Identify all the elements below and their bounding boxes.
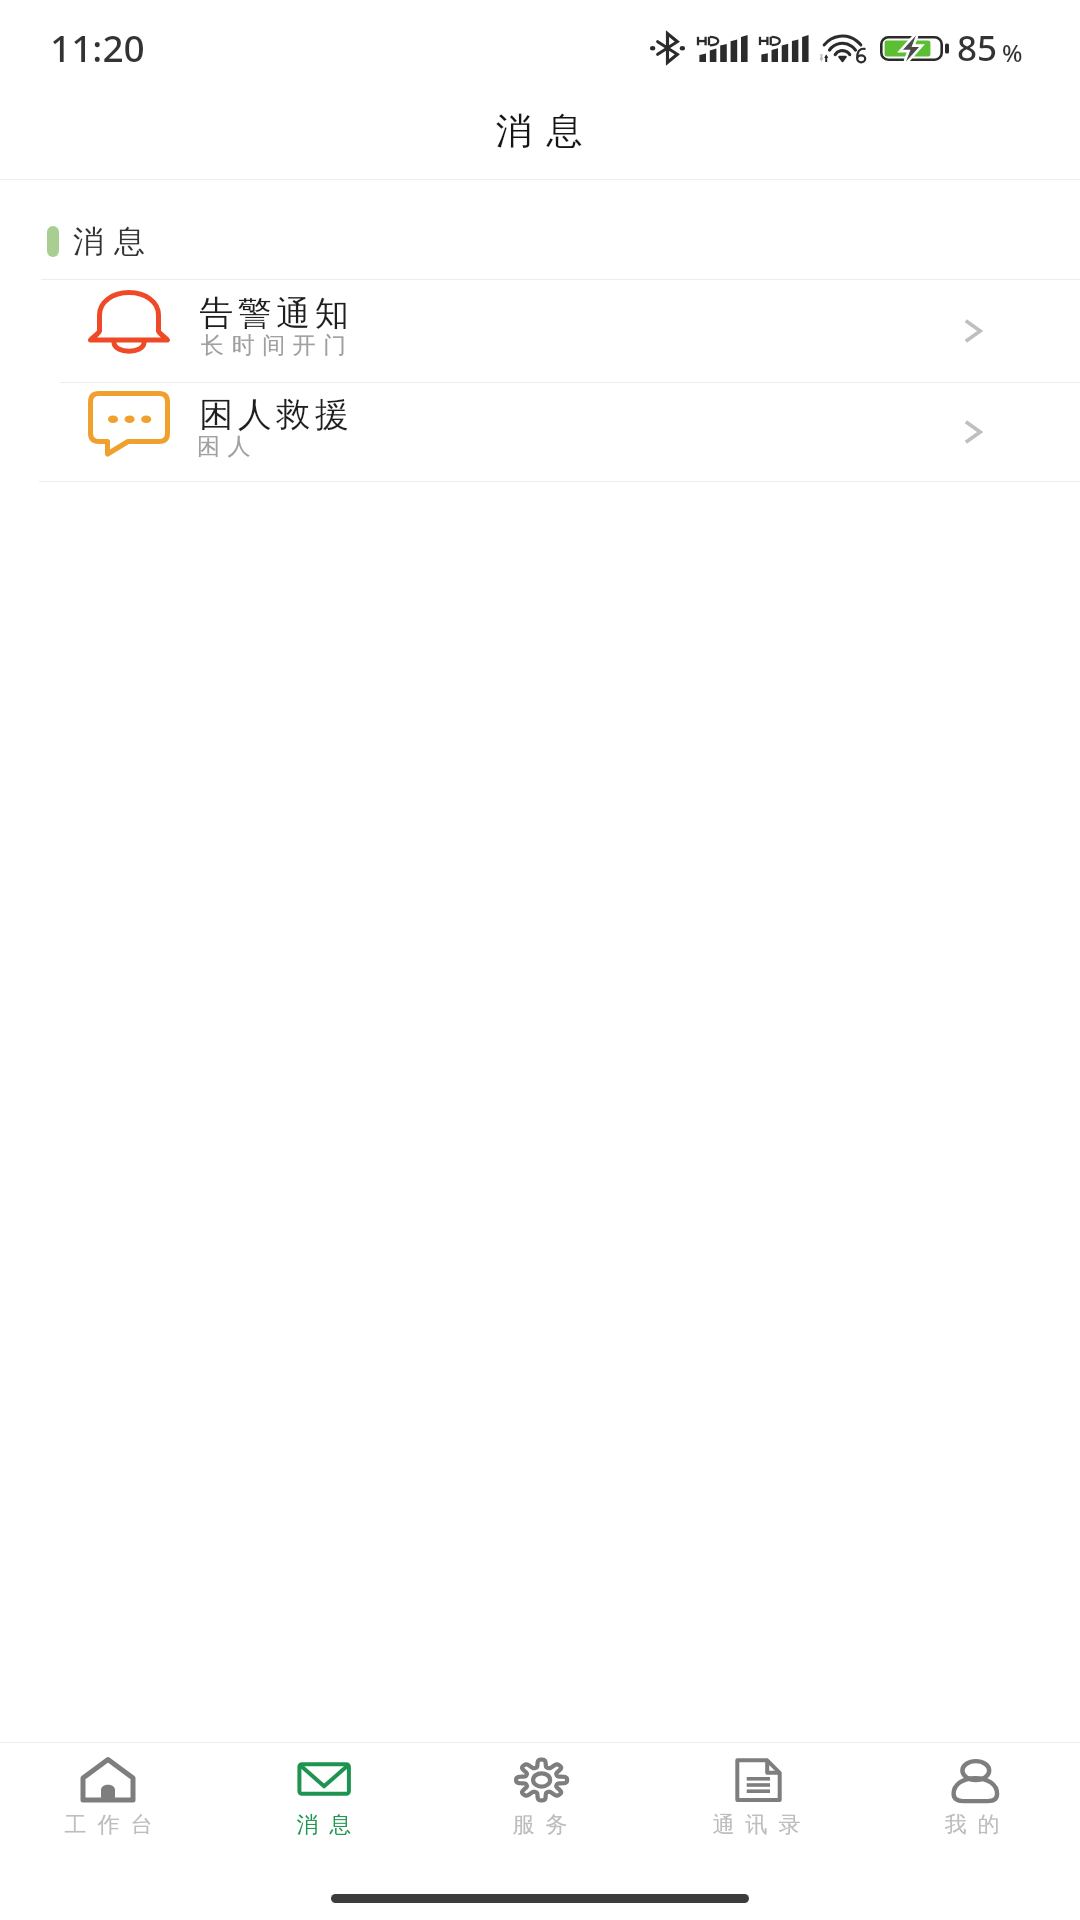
- staticText: 通讯录: [707, 1811, 806, 1839]
- staticText: 服务: [507, 1811, 573, 1839]
- staticText: 消息: [488, 108, 590, 153]
- staticText: 告警通知: [197, 292, 351, 335]
- staticText: %: [1002, 36, 1023, 69]
- button[interactable]: 服务: [432, 1743, 648, 1839]
- staticText: 85: [957, 24, 998, 72]
- staticText: 消息: [291, 1811, 357, 1839]
- button[interactable]: 消息: [216, 1743, 432, 1839]
- button[interactable]: 工作台: [0, 1743, 216, 1839]
- button[interactable]: 通讯录: [648, 1743, 864, 1839]
- staticText: 11:20: [50, 22, 145, 72]
- staticText: 工作台: [59, 1811, 158, 1839]
- button[interactable]: 我的: [864, 1743, 1080, 1839]
- staticText: 消息: [68, 222, 150, 261]
- button[interactable]: 告警通知: [0, 280, 1080, 382]
- staticText: 我的: [939, 1811, 1005, 1839]
- button[interactable]: 困人救援: [0, 383, 1080, 481]
- staticText: 长时间开门: [197, 331, 350, 360]
- staticText: 困人救援: [197, 393, 351, 436]
- staticText: 困人: [197, 432, 259, 461]
